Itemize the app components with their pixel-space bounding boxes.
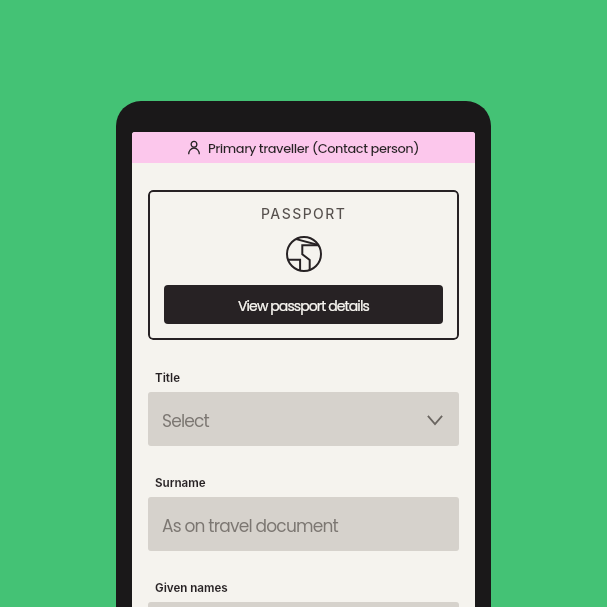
button[interactable]: Select bbox=[148, 392, 459, 446]
staticText: Title bbox=[155, 371, 180, 385]
staticText: View passport details bbox=[238, 296, 369, 316]
staticText: Select bbox=[162, 409, 209, 433]
staticText: Given names bbox=[155, 581, 228, 595]
staticText: Primary traveller (Contact person) bbox=[208, 139, 420, 157]
staticText: PASSPORT bbox=[261, 205, 347, 222]
staticText: Surname bbox=[155, 476, 206, 490]
other: Passport bbox=[286, 236, 322, 272]
button[interactable]: As on travel document bbox=[148, 497, 459, 551]
other: Traveller bbox=[187, 141, 201, 155]
button[interactable]: View passport details bbox=[164, 285, 443, 324]
staticText: As on travel document bbox=[162, 514, 338, 538]
other: Expand bbox=[427, 415, 443, 425]
button[interactable]: Traveller bbox=[132, 132, 475, 163]
